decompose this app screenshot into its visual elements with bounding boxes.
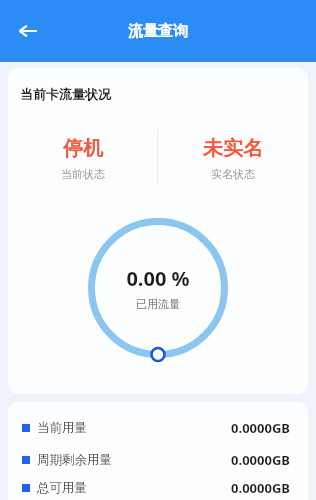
staticText: 流量查询: [128, 22, 188, 41]
staticText: 周期剩余用量: [37, 452, 112, 468]
staticText: 当前状态: [61, 167, 105, 181]
staticText: 0.0000GB: [231, 451, 290, 469]
button[interactable]: Back: [6, 9, 50, 53]
staticText: 当前卡流量状况: [20, 86, 111, 102]
staticText: 总可用量: [37, 480, 87, 496]
button[interactable]: 未实名: [158, 130, 308, 186]
button[interactable]: 停机: [8, 130, 157, 186]
staticText: 0.0000GB: [231, 419, 290, 437]
staticText: 0.00 %: [126, 265, 190, 292]
button[interactable]: 当前用量: [8, 412, 308, 444]
staticText: 当前用量: [37, 420, 87, 436]
button[interactable]: 周期剩余用量: [8, 444, 308, 476]
button[interactable]: 总可用量: [8, 476, 308, 500]
staticText: 实名状态: [211, 167, 255, 181]
staticText: 未实名: [203, 136, 263, 161]
staticText: 停机: [63, 136, 103, 161]
staticText: 0.0000GB: [231, 479, 290, 497]
staticText: 已用流量: [136, 297, 180, 311]
